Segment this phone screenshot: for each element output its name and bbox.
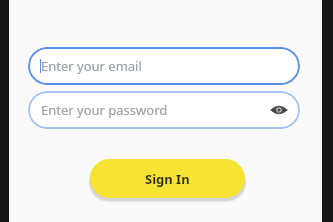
- staticText: Enter your email: [41, 57, 142, 75]
- staticText: Sign In: [145, 170, 190, 188]
- button[interactable]: Sign In: [90, 159, 245, 198]
- button[interactable]: Enter your email: [28, 47, 300, 85]
- button[interactable]: Enter your password: [28, 91, 300, 129]
- staticText: Enter your password: [41, 101, 268, 119]
- button[interactable]: Show password: [268, 99, 290, 121]
